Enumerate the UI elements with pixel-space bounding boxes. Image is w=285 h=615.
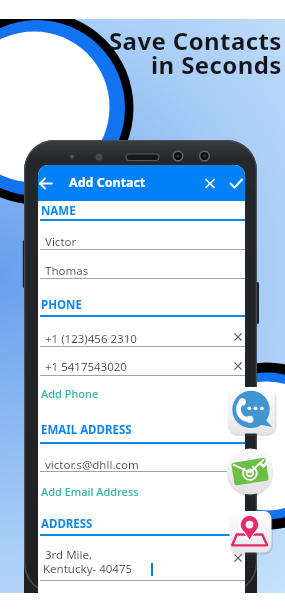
button[interactable] <box>231 359 245 373</box>
staticText: Add Email Address <box>41 484 139 499</box>
staticText: Kentucky- 40475 <box>43 561 133 577</box>
button[interactable] <box>231 551 245 565</box>
button[interactable]: +1 5417543020 <box>45 359 127 375</box>
staticText: +1 5417543020 <box>45 359 127 375</box>
staticText: Save Contacts <box>109 24 282 57</box>
staticText: Add Contact <box>69 174 146 191</box>
staticText: Add Phone <box>41 386 99 401</box>
button[interactable]: Kentucky- 40475 <box>43 561 133 577</box>
button[interactable]: Thomas <box>45 263 89 279</box>
button[interactable]: 3rd Mile, <box>45 547 93 563</box>
button[interactable] <box>224 444 278 498</box>
button[interactable]: Add Email Address <box>41 484 139 499</box>
button[interactable] <box>229 510 273 554</box>
staticText: Thomas <box>45 263 89 279</box>
button[interactable]: Add Phone <box>41 386 99 401</box>
staticText: victor.s@dhll.com <box>45 457 139 473</box>
button[interactable] <box>231 330 245 344</box>
button[interactable] <box>227 386 276 435</box>
staticText: in Seconds <box>151 48 282 81</box>
staticText: NAME <box>41 203 76 219</box>
button[interactable] <box>199 172 221 194</box>
button[interactable] <box>225 172 245 194</box>
staticText: Victor <box>45 234 77 250</box>
staticText: +1 (123)456 2310 <box>45 331 137 347</box>
button[interactable]: +1 (123)456 2310 <box>45 331 137 347</box>
staticText: EMAIL ADDRESS <box>41 422 132 438</box>
staticText: PHONE <box>41 297 82 313</box>
staticText: ADDRESS <box>41 516 93 532</box>
button[interactable]: victor.s@dhll.com <box>45 457 139 473</box>
staticText: 3rd Mile, <box>45 547 93 563</box>
button[interactable] <box>38 171 56 195</box>
button[interactable]: Victor <box>45 234 77 250</box>
